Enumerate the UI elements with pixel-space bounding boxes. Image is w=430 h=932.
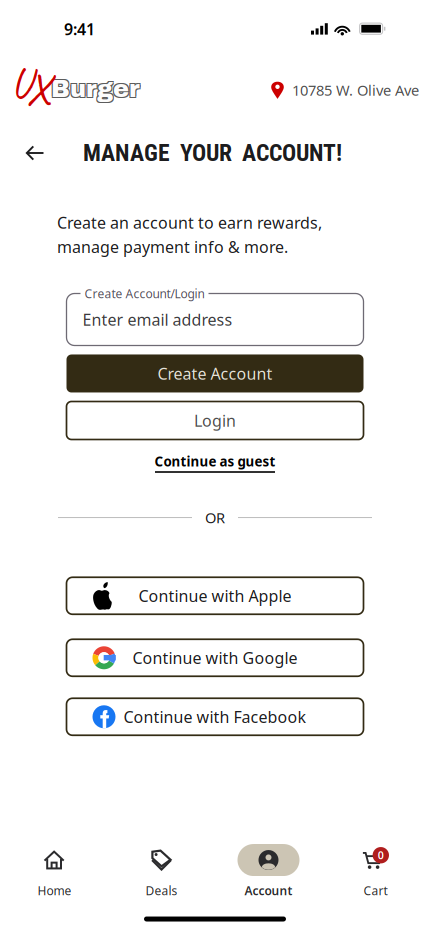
staticText: U [11,57,31,109]
staticText: Burger [50,75,139,101]
staticText: Deals [145,882,177,898]
staticText: Continue with Apple [138,585,291,606]
staticText: Account [244,882,292,898]
button[interactable]: Deals [108,843,215,898]
staticText: Continue as guest [154,452,275,470]
staticText: Create an account to earn rewards, [57,212,322,233]
staticText: Home [37,882,71,898]
button[interactable]: Continue as guest [154,452,275,473]
staticText: 0 [378,848,384,862]
staticText: Burger [51,76,140,102]
button[interactable]: 0 [322,843,429,898]
staticText: MANAGE YOUR ACCOUNT! [83,139,342,167]
staticText: 9:41 [64,18,95,40]
staticText: Cart [363,882,387,898]
staticText: Continue with Facebook [123,706,306,727]
button[interactable]: Continue with Facebook [66,698,363,735]
button[interactable]: Create Account [66,354,363,392]
staticText: Login [194,410,236,431]
button[interactable]: Login [66,401,363,439]
staticText: OR [205,508,225,527]
button[interactable]: Continue with Google [66,639,363,676]
staticText: Burger [52,75,141,101]
staticText: Burger [50,77,139,103]
staticText: Create Account [157,363,272,384]
staticText: manage payment info & more. [57,236,288,257]
staticText: X [26,60,50,117]
staticText: Enter email address [82,309,232,330]
button[interactable]: Home [1,843,108,898]
staticText: 10785 W. Olive Ave [292,80,419,100]
button[interactable]: Continue with Apple [66,577,363,614]
staticText: Create Account/Login [84,285,204,301]
button[interactable]: Account [215,843,322,898]
button[interactable]: Back [13,131,57,175]
staticText: Continue with Google [132,647,297,668]
staticText: Burger [52,77,141,103]
